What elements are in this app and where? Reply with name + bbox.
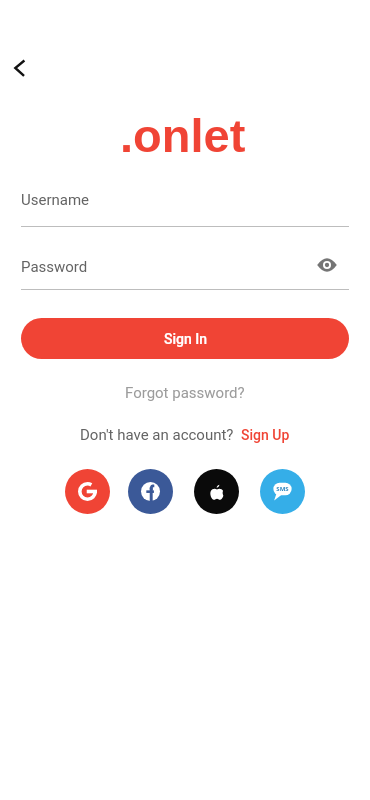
button[interactable]: Sign in with Facebook: [128, 469, 173, 514]
button[interactable]: Sign in with SMS: [260, 469, 305, 514]
button[interactable]: Sign in with Apple: [194, 469, 239, 514]
button[interactable]: Sign in with Google: [65, 469, 110, 514]
staticText: .onlet: [120, 109, 246, 162]
staticText: Don't have an account?: [80, 426, 234, 444]
button[interactable]: Show password: [312, 250, 342, 280]
staticText: Sign Up: [241, 427, 290, 443]
staticText: Forgot password?: [125, 384, 245, 402]
staticText: SMS: [276, 485, 289, 493]
staticText: Username: [21, 191, 90, 209]
button[interactable]: Sign Up: [241, 427, 290, 443]
staticText: Password: [21, 258, 319, 276]
button[interactable]: Forgot password?: [117, 380, 253, 406]
staticText: Sign In: [164, 331, 207, 347]
button[interactable]: Back: [1, 50, 37, 86]
button[interactable]: Sign In: [21, 318, 349, 359]
